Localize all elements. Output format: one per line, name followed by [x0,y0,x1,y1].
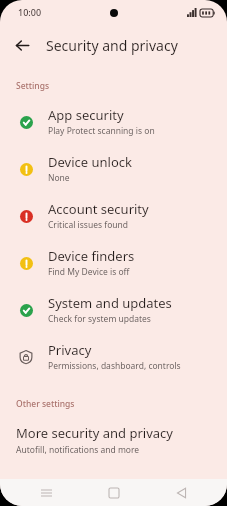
button[interactable]: More security and privacy [0,422,227,460]
button[interactable]: Device finders [0,245,227,280]
staticText: More security and privacy [16,424,173,442]
staticText: Permissions, dashboard, controls [48,360,181,372]
staticText: Play Protect scanning is on [48,125,155,137]
staticText: None [48,172,70,184]
staticText: Security and privacy [46,36,178,55]
button[interactable]: Home [92,479,136,506]
staticText: Autofill, notifications and more [16,444,140,456]
button[interactable]: Account security [0,198,227,233]
staticText: App security [48,106,124,124]
staticText: Privacy [48,341,92,359]
staticText: Check for system updates [48,313,151,325]
button[interactable]: System and updates [0,292,227,327]
staticText: Device finders [48,247,135,265]
button[interactable]: Device unlock [0,151,227,186]
button[interactable]: Recent apps [24,479,68,506]
staticText: Account security [48,200,149,218]
button[interactable]: Back [6,29,38,61]
staticText: System and updates [48,294,172,312]
button[interactable]: Privacy [0,339,227,374]
button[interactable]: App security [0,104,227,139]
staticText: Find My Device is off [48,266,130,278]
staticText: Settings [16,80,50,92]
button[interactable]: Back [159,479,203,506]
staticText: 10:00 [18,6,42,18]
staticText: Other settings [16,398,75,410]
staticText: Device unlock [48,153,132,171]
staticText: Critical issues found [48,219,129,231]
